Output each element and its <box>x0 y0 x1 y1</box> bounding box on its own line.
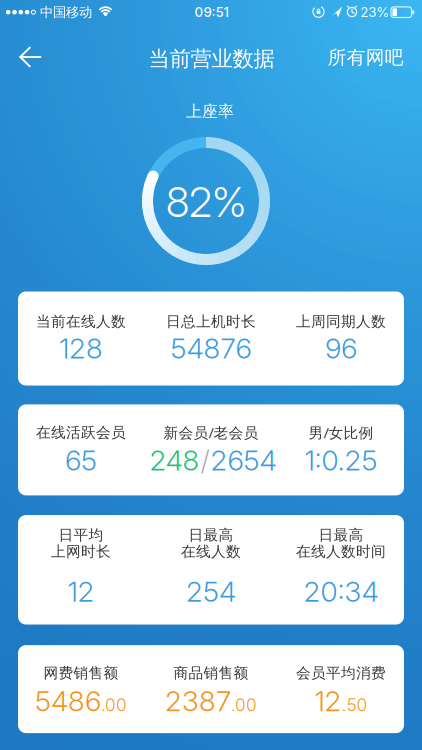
staticText: 男/女比例 <box>308 423 373 442</box>
staticText: 当前营业数据 <box>148 46 274 72</box>
staticText: 新会员/老会员 <box>163 423 258 442</box>
staticText: 日最高 <box>318 526 363 544</box>
staticText: 日总上机时长 <box>166 312 256 330</box>
staticText: 54876 <box>170 331 251 365</box>
staticText: 128 <box>59 331 103 365</box>
staticText: 中国移动 <box>40 4 92 20</box>
staticText: 20:34 <box>303 575 378 608</box>
staticText: 248 <box>149 443 199 477</box>
staticText: 12 <box>314 684 341 718</box>
staticText: 网费销售额 <box>43 664 118 682</box>
staticText: .00 <box>101 694 127 715</box>
staticText: 2654 <box>210 443 276 477</box>
staticText: 23% <box>360 4 389 20</box>
staticText: 254 <box>186 575 236 608</box>
button[interactable]: 所有网吧 <box>328 46 404 69</box>
staticText: 日平均 <box>58 526 103 544</box>
staticText: 2387 <box>165 684 231 718</box>
staticText: 上网时长 <box>51 542 111 560</box>
staticText: 上座率 <box>186 102 234 121</box>
staticText: 当前在线人数 <box>36 312 126 330</box>
staticText: 65 <box>65 443 97 477</box>
staticText: 96 <box>325 331 357 365</box>
staticText: 在线活跃会员 <box>36 423 126 441</box>
staticText: 09:51 <box>194 4 229 20</box>
staticText: 在线人数 <box>181 542 241 560</box>
staticText: 5486 <box>35 684 101 718</box>
staticText: / <box>200 443 209 477</box>
staticText: 所有网吧 <box>328 46 404 69</box>
staticText: 日最高 <box>188 526 233 544</box>
staticText: 1:0.25 <box>304 443 377 477</box>
staticText: .00 <box>231 694 257 715</box>
staticText: 在线人数时间 <box>296 542 386 560</box>
staticText: 上周同期人数 <box>296 312 386 330</box>
staticText: 会员平均消费 <box>296 664 386 682</box>
staticText: 82% <box>166 177 246 227</box>
button[interactable]: 返回 <box>18 46 43 68</box>
staticText: 商品销售额 <box>173 664 248 682</box>
staticText: .50 <box>341 694 367 715</box>
staticText: 12 <box>67 575 94 608</box>
